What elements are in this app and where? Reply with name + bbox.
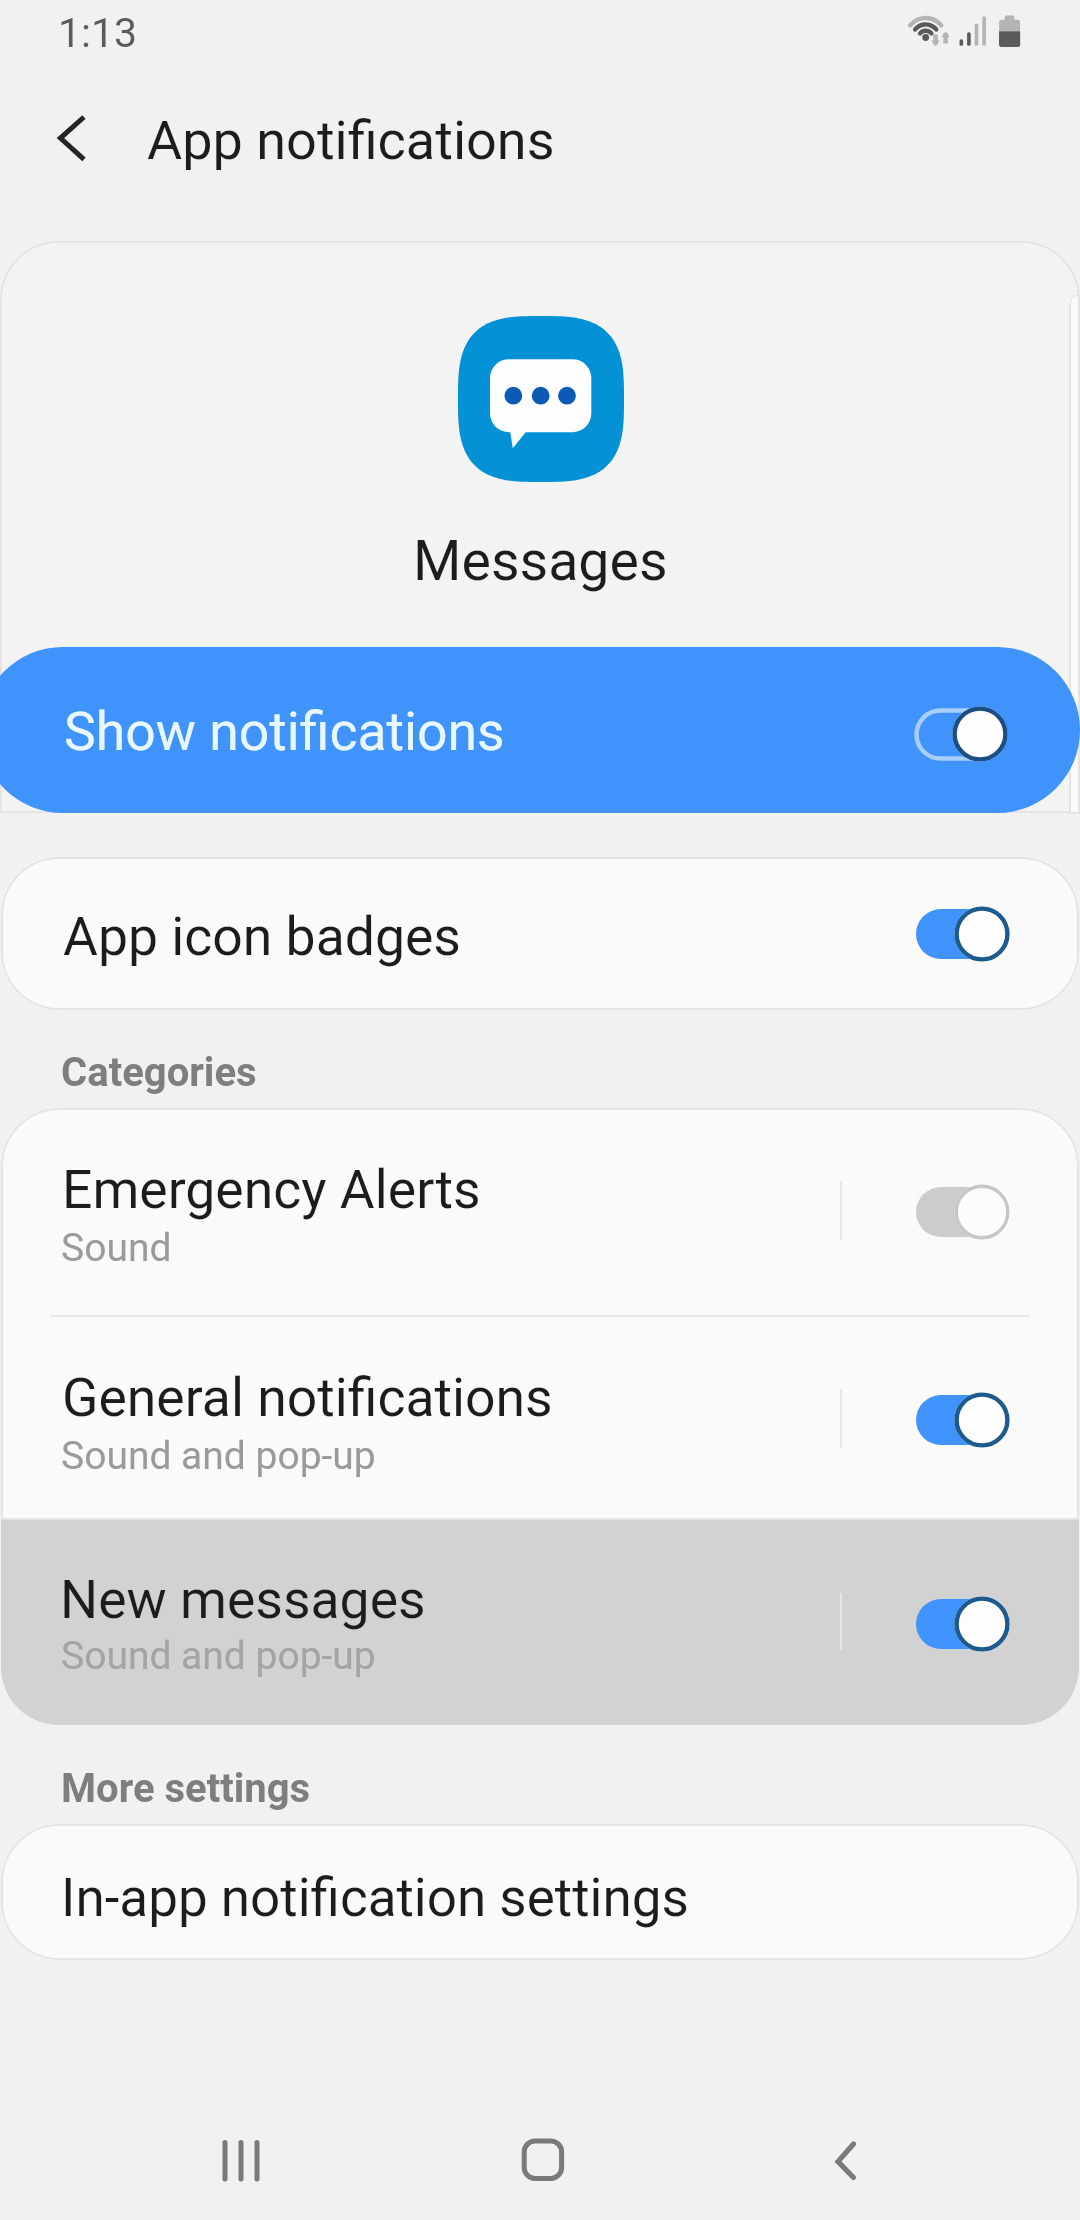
staticText: App icon badges: [63, 905, 461, 968]
button[interactable]: Back: [28, 100, 114, 172]
button[interactable]: Show notifications: [0, 647, 1080, 813]
staticText: In-app notification settings: [61, 1867, 689, 1929]
button[interactable]: Recent apps: [180, 2110, 300, 2190]
button[interactable]: App icon badges: [1, 857, 1079, 1010]
staticText: Messages: [413, 529, 668, 594]
staticText: 1:13: [58, 9, 138, 57]
button[interactable]: [916, 906, 1012, 964]
staticText: App notifications: [147, 109, 555, 172]
button[interactable]: General notifications: [1, 1316, 1079, 1520]
staticText: Sound: [61, 1225, 172, 1271]
button[interactable]: Home: [479, 2110, 599, 2190]
button[interactable]: [914, 706, 1010, 764]
staticText: Sound and pop-up: [61, 1633, 376, 1679]
button[interactable]: Back: [784, 2112, 904, 2192]
button[interactable]: Emergency Alerts: [1, 1108, 1079, 1315]
staticText: Emergency Alerts: [62, 1158, 481, 1221]
button[interactable]: [916, 1596, 1012, 1654]
button[interactable]: [916, 1184, 1012, 1242]
button[interactable]: [916, 1392, 1012, 1450]
staticText: Show notifications: [64, 700, 505, 763]
staticText: More settings: [61, 1765, 311, 1812]
button[interactable]: New messages: [1, 1520, 1079, 1725]
staticText: New messages: [60, 1568, 426, 1631]
staticText: Sound and pop-up: [61, 1433, 376, 1479]
button[interactable]: In-app notification settings: [1, 1824, 1079, 1960]
staticText: Categories: [61, 1049, 257, 1096]
staticText: General notifications: [62, 1366, 553, 1429]
